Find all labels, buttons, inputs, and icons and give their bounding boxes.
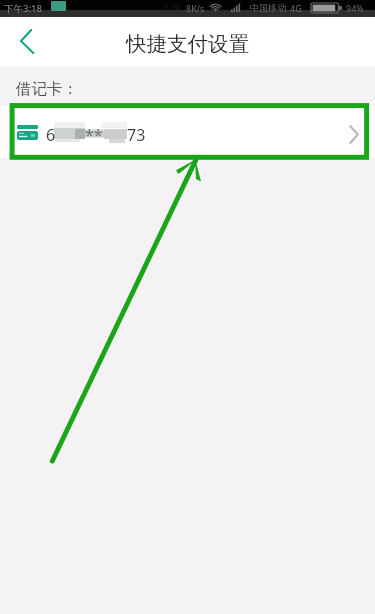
- staticText: 借记卡：: [16, 79, 78, 99]
- staticText: 快捷支付设置: [126, 31, 249, 57]
- button[interactable]: Back: [0, 17, 52, 67]
- staticText: 中国移动: [250, 2, 286, 13]
- staticText: 4G: [290, 2, 302, 14]
- staticText: 8K/s: [186, 2, 205, 14]
- staticText: **: [85, 124, 103, 146]
- staticText: 下午3:18: [4, 2, 42, 15]
- button[interactable]: 6: [0, 106, 375, 158]
- staticText: 73: [127, 124, 146, 146]
- staticText: 6: [46, 124, 56, 146]
- staticText: 94%: [346, 2, 364, 14]
- staticText: 0.26: [163, 2, 181, 14]
